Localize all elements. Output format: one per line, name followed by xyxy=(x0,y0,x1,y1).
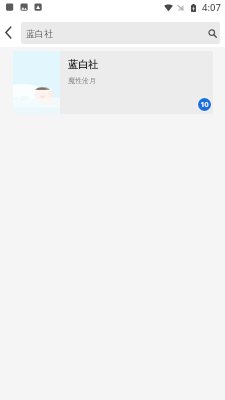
button[interactable]: 蓝白社 xyxy=(13,51,213,114)
button[interactable]: Back xyxy=(0,19,21,46)
staticText: 蓝白社 xyxy=(26,28,53,39)
button[interactable]: 蓝白社 xyxy=(21,22,220,44)
button[interactable]: Search xyxy=(205,22,220,44)
button[interactable]: 10 xyxy=(196,96,213,113)
staticText: 魔性沧月 xyxy=(68,76,96,85)
staticText: 蓝白社 xyxy=(68,58,98,71)
staticText: 10 xyxy=(200,100,209,110)
staticText: 4:07 xyxy=(202,1,221,14)
